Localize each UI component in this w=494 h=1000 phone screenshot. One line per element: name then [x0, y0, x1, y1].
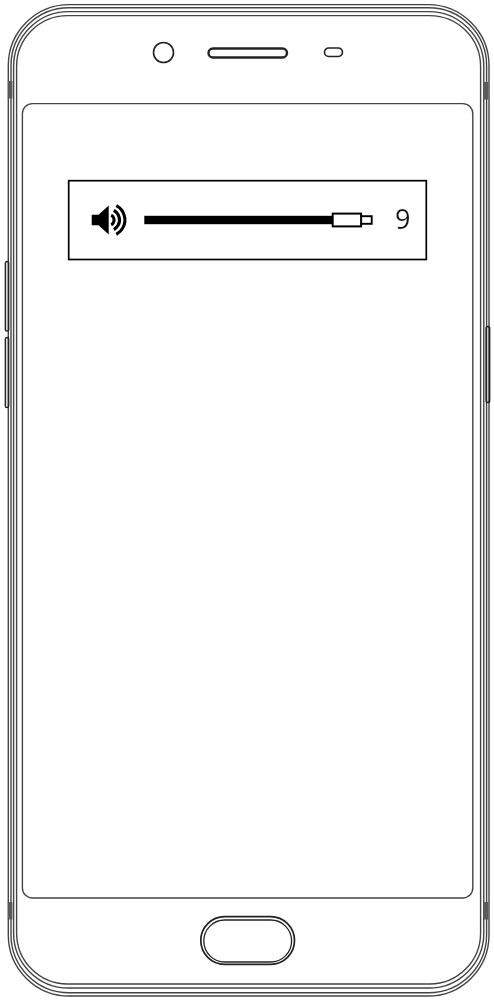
button[interactable]: Home button — [200, 916, 295, 965]
button[interactable]: Volume down key — [3, 335, 11, 410]
button[interactable]: Volume level 9 — [140, 198, 376, 242]
staticText: 9 — [395, 200, 411, 237]
button[interactable]: Power key — [484, 324, 492, 405]
button[interactable]: Mute volume — [84, 202, 120, 238]
button[interactable]: Volume up key — [3, 259, 11, 333]
button[interactable]: Mute volume — [68, 180, 427, 260]
